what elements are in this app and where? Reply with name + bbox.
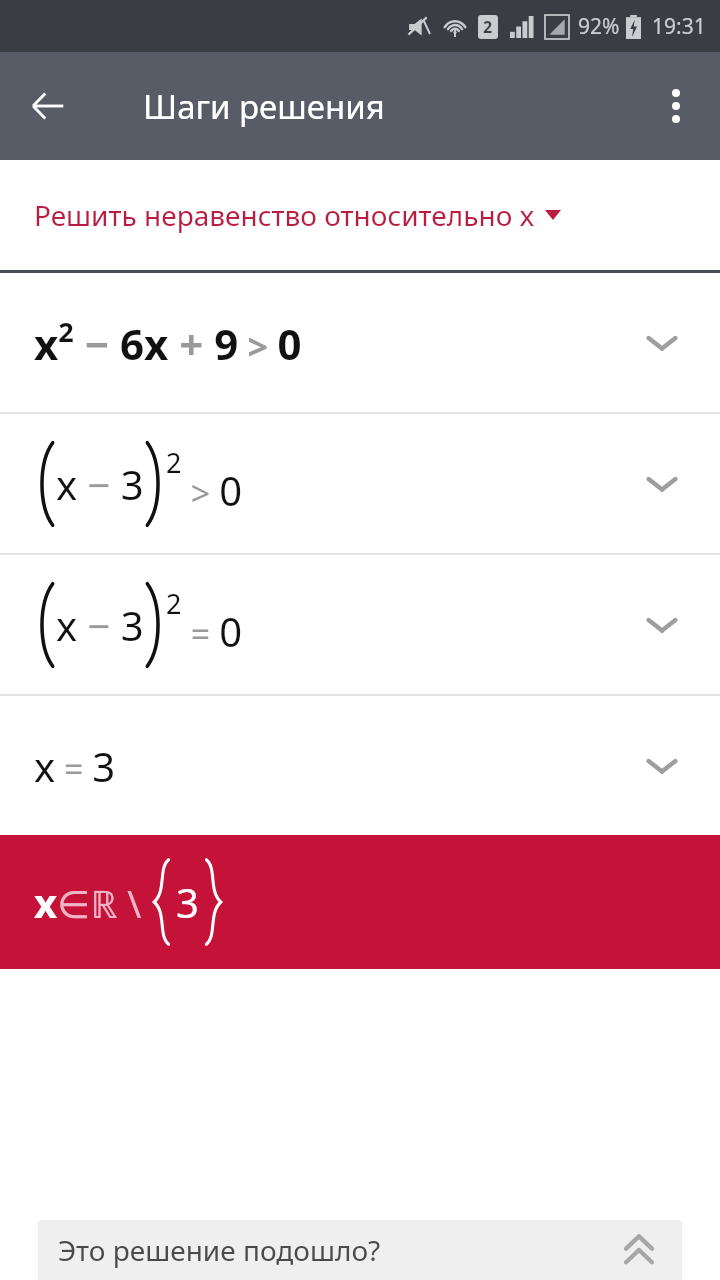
button[interactable]: x∈ℝ \ — [0, 835, 720, 969]
button[interactable]: x − 3 — [0, 414, 720, 553]
button[interactable]: x − 3 — [0, 555, 720, 694]
button[interactable]: More options — [642, 72, 710, 140]
staticText: x2 − 6x + 9 > 0 — [34, 313, 302, 372]
other: Expand — [634, 597, 690, 653]
button[interactable]: Back — [14, 72, 82, 140]
staticText: 2 — [483, 16, 493, 38]
staticText: Шаги решения — [143, 84, 385, 129]
staticText: 2 — [166, 585, 182, 622]
staticText: x = 3 — [34, 739, 116, 793]
button[interactable]: Это решение подошло? — [38, 1220, 682, 1280]
other: Expand — [634, 456, 690, 512]
staticText: 92% — [578, 12, 620, 41]
button[interactable]: x = 3 — [0, 696, 720, 835]
other: Expand — [634, 315, 690, 371]
staticText: 19:31 — [652, 12, 706, 41]
staticText: x − 3 — [56, 457, 144, 511]
button[interactable]: Решить неравенство относительно x — [0, 160, 720, 270]
staticText: x − 3 — [56, 598, 144, 652]
staticText: > 0 — [182, 463, 243, 517]
other: Expand — [634, 738, 690, 794]
staticText: Это решение подошло? — [58, 1231, 381, 1269]
staticText: = 0 — [182, 604, 243, 658]
button[interactable]: x2 − 6x + 9 > 0 — [0, 273, 720, 412]
staticText: 3 — [176, 875, 199, 929]
staticText: Решить неравенство относительно x — [34, 196, 535, 234]
staticText: 2 — [166, 444, 182, 481]
staticText: x∈ℝ \ — [34, 875, 152, 929]
